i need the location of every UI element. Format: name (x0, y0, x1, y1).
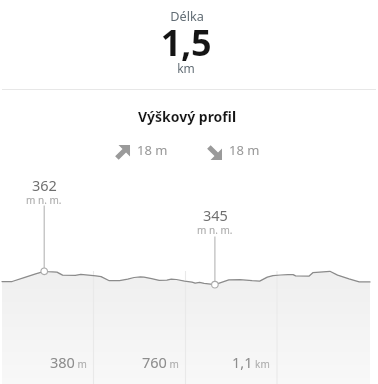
button[interactable]: Celkové stoupání 18 metrů (114, 143, 168, 161)
staticText: m n. m. (26, 193, 62, 207)
staticText: Délka (0, 7, 376, 24)
staticText: 18 m (137, 141, 168, 159)
staticText: 380 m (50, 352, 87, 372)
staticText: 1,5 (0, 18, 375, 67)
staticText: 1,1 km (232, 352, 270, 372)
staticText: 362 (32, 175, 57, 195)
staticText: m n. m. (197, 223, 233, 237)
staticText: Výškový profil (0, 107, 376, 126)
button[interactable]: Délka (0, 0, 378, 89)
staticText: 18 m (229, 141, 260, 159)
staticText: km (0, 60, 375, 76)
button[interactable]: Celkové klesání 18 metrů (206, 143, 260, 161)
staticText: 760 m (142, 352, 179, 372)
staticText: 345 (203, 205, 228, 225)
